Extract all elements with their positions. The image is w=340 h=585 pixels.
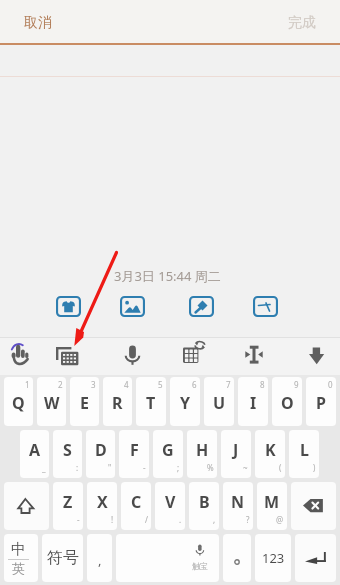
button[interactable]: H <box>187 430 217 478</box>
button[interactable]: Hide keyboard <box>301 337 333 375</box>
button[interactable]: Move cursor <box>237 337 271 375</box>
button[interactable]: Switch keyboard <box>48 337 87 375</box>
button[interactable]: 4 <box>103 377 132 426</box>
staticText: U <box>213 392 226 414</box>
button[interactable]: Voice input <box>117 337 148 375</box>
button[interactable]: 5 <box>136 377 166 426</box>
staticText: 6 <box>192 379 197 390</box>
staticText: J <box>233 439 239 461</box>
staticText: , <box>213 514 216 525</box>
staticText: 触宝 <box>192 561 208 571</box>
button[interactable]: Add image <box>120 296 145 317</box>
button[interactable]: J <box>221 430 251 478</box>
staticText: @ <box>276 514 284 525</box>
staticText: L <box>300 439 309 461</box>
staticText: 123 <box>262 549 285 567</box>
staticText: 0 <box>328 379 333 390</box>
staticText: K <box>265 439 276 461</box>
staticText: C <box>131 491 142 513</box>
button[interactable]: A <box>20 430 49 478</box>
button[interactable]: G <box>153 430 183 478</box>
staticText: T <box>146 392 156 414</box>
staticText: 3月3日 15:44 周二 <box>114 267 221 285</box>
staticText: - <box>143 462 146 473</box>
staticText: 1 <box>25 379 30 390</box>
button[interactable]: 8 <box>238 377 268 426</box>
button[interactable]: B <box>189 482 219 530</box>
button[interactable]: C <box>121 482 151 530</box>
button[interactable]: , <box>87 534 112 582</box>
staticText: 符号 <box>47 548 79 568</box>
staticText: A <box>29 439 41 461</box>
button[interactable]: F <box>119 430 149 478</box>
staticText: F <box>130 439 139 461</box>
staticText: 取消 <box>24 14 52 32</box>
staticText: 2 <box>58 379 63 390</box>
staticText: 7 <box>226 379 231 390</box>
staticText: O <box>281 392 294 414</box>
staticText: 完成 <box>288 14 316 32</box>
staticText: D <box>95 439 107 461</box>
staticText: ( <box>279 462 282 473</box>
staticText: 8 <box>260 379 265 390</box>
button[interactable]: X <box>87 482 117 530</box>
button[interactable]: S <box>53 430 82 478</box>
button[interactable]: Handwriting input <box>3 337 38 375</box>
button[interactable]: Add clothing <box>56 296 81 317</box>
staticText: ~ <box>243 462 248 473</box>
staticText: N <box>231 491 245 513</box>
button[interactable]: K <box>255 430 285 478</box>
staticText: 9 <box>294 379 299 390</box>
staticText: 3 <box>91 379 96 390</box>
button[interactable]: 完成 <box>288 1 316 45</box>
staticText: _ <box>42 462 46 473</box>
staticText: 中 <box>11 540 26 559</box>
button[interactable]: 0 <box>306 377 336 426</box>
button[interactable]: L <box>289 430 319 478</box>
button[interactable] <box>223 534 251 582</box>
button[interactable]: 符号 <box>42 534 83 582</box>
staticText: ! <box>111 514 114 525</box>
staticText: " <box>108 462 112 473</box>
staticText: B <box>199 491 210 513</box>
staticText: W <box>44 392 60 414</box>
button[interactable]: 1 <box>4 377 33 426</box>
button[interactable]: Backspace <box>291 482 336 530</box>
button[interactable]: Z <box>53 482 83 530</box>
button[interactable]: Enter key <box>295 534 336 582</box>
staticText: G <box>162 439 174 461</box>
button[interactable]: 3 <box>70 377 99 426</box>
staticText: I <box>250 392 257 414</box>
staticText: % <box>207 462 214 473</box>
staticText: M <box>264 491 280 513</box>
staticText: P <box>316 392 326 414</box>
button[interactable]: 取消 <box>24 1 52 45</box>
button[interactable]: Shift <box>4 482 49 530</box>
staticText: R <box>112 392 123 414</box>
button[interactable]: D <box>86 430 115 478</box>
staticText: / <box>145 514 148 525</box>
button[interactable]: Add sticker <box>189 296 214 317</box>
button[interactable]: Keypad layout <box>175 337 213 375</box>
button[interactable]: M <box>257 482 287 530</box>
staticText: S <box>63 439 72 461</box>
button[interactable]: N <box>223 482 253 530</box>
staticText: 英 <box>12 560 25 576</box>
staticText: , <box>98 551 102 569</box>
button[interactable]: V <box>155 482 185 530</box>
button[interactable]: 触宝 <box>116 534 219 582</box>
button[interactable]: 6 <box>170 377 200 426</box>
button[interactable]: 123 <box>255 534 291 582</box>
button[interactable]: 中 <box>4 534 38 582</box>
button[interactable]: 9 <box>272 377 302 426</box>
staticText: Q <box>12 392 25 414</box>
button[interactable]: 7 <box>204 377 234 426</box>
staticText: H <box>196 439 209 461</box>
staticText: : <box>76 462 79 473</box>
staticText: Y <box>180 392 191 414</box>
button[interactable]: Add drawing <box>253 296 278 317</box>
staticText: ; <box>177 462 180 473</box>
staticText: . <box>179 514 182 525</box>
staticText: E <box>80 392 89 414</box>
button[interactable]: 2 <box>37 377 66 426</box>
